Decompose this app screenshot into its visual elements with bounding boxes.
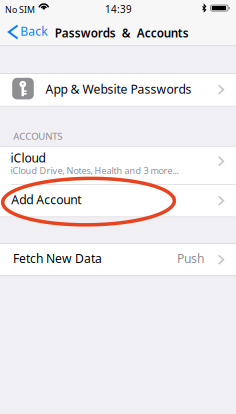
staticText: No SIM (5, 4, 35, 16)
staticText: Passwords & Accounts (55, 25, 189, 41)
staticText: App & Website Passwords (46, 81, 192, 97)
button[interactable]: Back (0, 18, 52, 45)
staticText: Add Account (11, 191, 81, 208)
staticText: Back (20, 23, 47, 39)
staticText: 14:39 (105, 2, 132, 16)
staticText: ACCOUNTS (13, 129, 62, 143)
staticText: iCloud (11, 150, 46, 166)
button[interactable]: iCloud (0, 147, 236, 184)
button[interactable]: Add Account (0, 185, 236, 217)
button[interactable]: Fetch New Data (0, 244, 236, 275)
staticText: Fetch New Data (13, 250, 102, 267)
staticText: Push (177, 250, 204, 267)
staticText: iCloud Drive, Notes, Health and 3 more..… (11, 164, 179, 176)
button[interactable]: App & Website Passwords (0, 74, 236, 106)
